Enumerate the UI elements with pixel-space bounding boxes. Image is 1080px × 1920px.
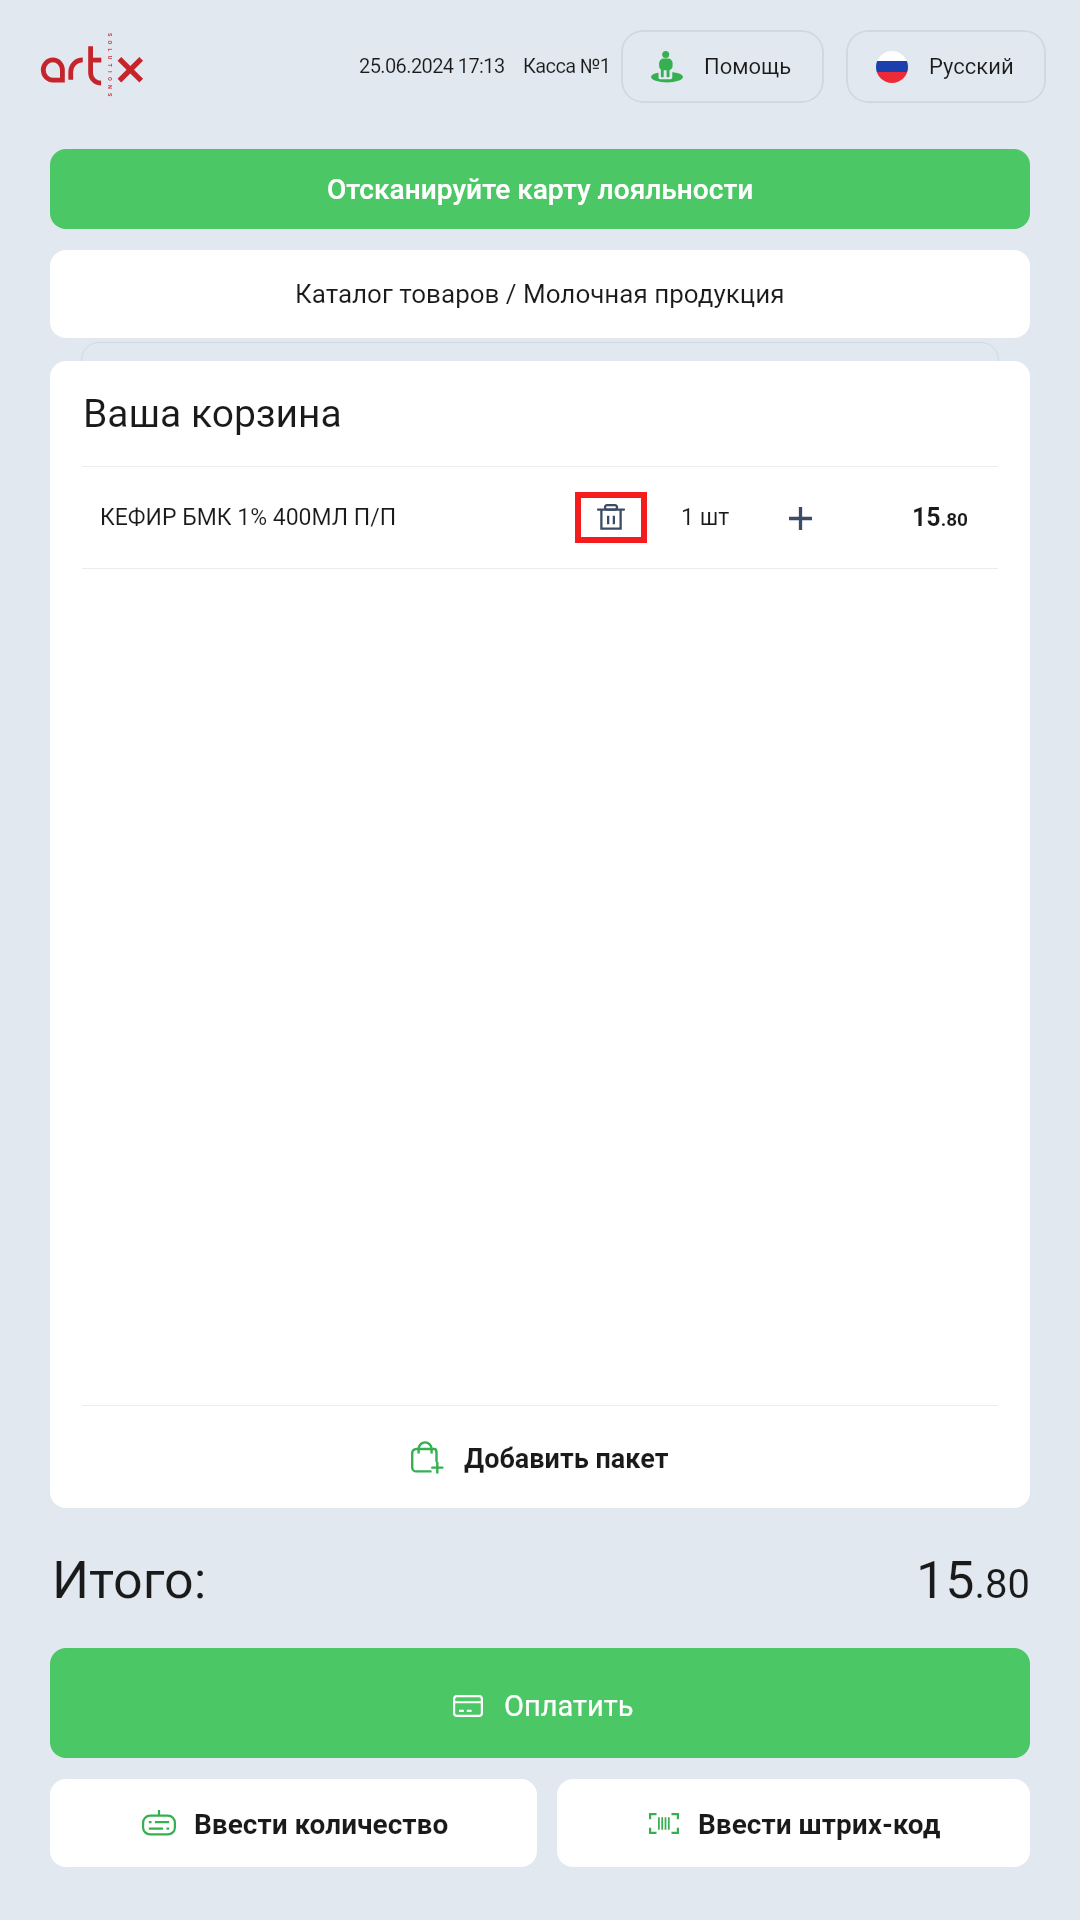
staticText: 15.80 [916,1550,1030,1611]
staticText: Итого: [52,1550,207,1611]
staticText: Ваша корзина [83,391,342,437]
staticText: Ввести штрих-код [698,1808,941,1841]
staticText: Русский [929,54,1014,80]
button[interactable]: Удалить товар [575,492,647,543]
staticText: Касса №1 [523,54,611,77]
staticText: SOLUTIONS [107,33,113,101]
button[interactable]: Ввести количество [50,1779,537,1867]
button[interactable]: Отсканируйте карту лояльности [50,149,1030,229]
button[interactable]: КЕФИР БМК 1% 400МЛ П/П [50,467,1030,568]
button[interactable]: Ввести штрих-код [557,1779,1030,1867]
staticText: Ввести количество [194,1808,449,1841]
button[interactable]: Добавить пакет [50,1406,1030,1508]
button[interactable]: Добавить количество [778,496,822,540]
staticText: Каталог товаров / Молочная продукция [295,279,785,309]
button[interactable]: Помощь [621,30,824,103]
button[interactable]: Каталог товаров / Молочная продукция [50,250,1030,338]
staticText: Оплатить [504,1689,634,1723]
staticText: Добавить пакет [464,1443,669,1475]
staticText: 25.06.2024 17:13 [359,54,505,77]
staticText: 15.80 [912,503,969,532]
staticText: Отсканируйте карту лояльности [327,173,754,206]
staticText: 1 шт [681,504,730,531]
staticText: КЕФИР БМК 1% 400МЛ П/П [100,504,397,531]
button[interactable]: Русский [846,30,1046,103]
staticText: Помощь [704,54,792,80]
button[interactable]: Оплатить [50,1648,1030,1758]
